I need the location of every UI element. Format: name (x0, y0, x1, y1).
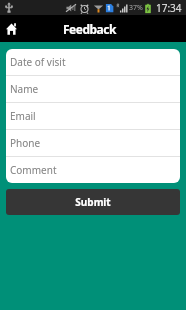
staticText: Name (10, 82, 39, 96)
staticText: Submit (75, 195, 111, 209)
button[interactable]: Home (0, 18, 22, 40)
button[interactable]: Submit (6, 189, 180, 215)
staticText: Date of visit (10, 55, 66, 69)
button[interactable]: Date of visit (6, 49, 180, 75)
staticText: Feedback (63, 21, 116, 37)
staticText: Email (10, 109, 36, 123)
button[interactable]: Phone (6, 129, 180, 156)
button[interactable]: Comment (6, 156, 180, 183)
button[interactable]: Name (6, 75, 180, 102)
staticText: 37% (129, 3, 143, 13)
button[interactable]: Email (6, 102, 180, 129)
staticText: Comment (10, 163, 57, 177)
staticText: Phone (10, 136, 41, 150)
staticText: 17:34 (156, 1, 182, 15)
